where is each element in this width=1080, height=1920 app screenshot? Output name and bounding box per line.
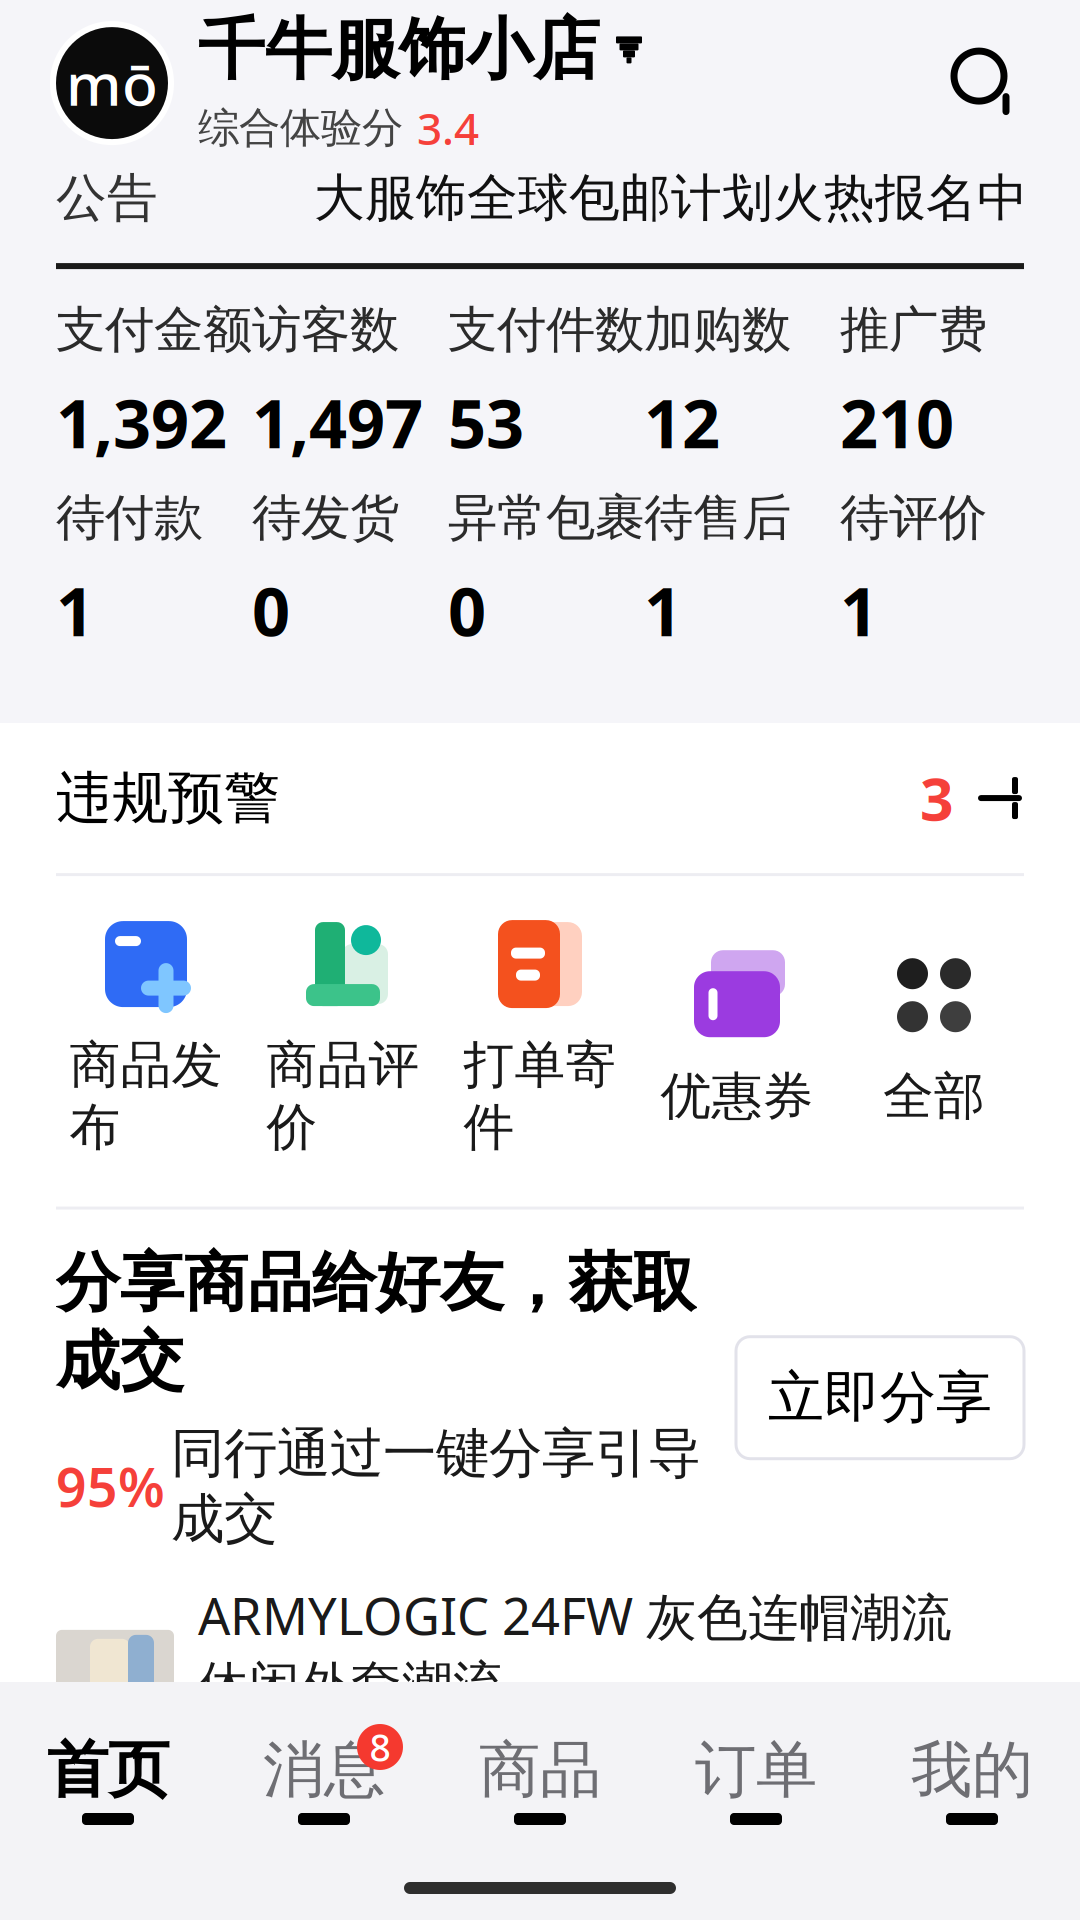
staticText: 推广费 — [840, 299, 987, 360]
staticText: 12 — [644, 378, 720, 467]
button[interactable]: ARMYLOGIC 24FW 灰色连帽潮流休闲外套潮流… — [56, 1552, 1024, 1844]
button[interactable]: 待发货 — [252, 487, 448, 673]
button[interactable]: 我的 — [864, 1712, 1080, 1852]
button[interactable]: 异常包裹 — [448, 487, 644, 673]
staticText: 3 — [920, 759, 954, 837]
button[interactable]: 支付件数 — [448, 299, 644, 485]
staticText: 商品ID 8493809380029 — [198, 1733, 744, 1800]
staticText: 1,392 — [56, 378, 227, 467]
staticText: 210 — [840, 378, 954, 467]
staticText: mō — [66, 44, 158, 122]
button[interactable]: 加购数 — [644, 299, 840, 485]
staticText: 公告 — [56, 167, 158, 229]
button[interactable]: 支付金额 — [56, 299, 252, 485]
button[interactable]: 商品评价 — [244, 916, 441, 1159]
button[interactable]: 待评价 — [840, 487, 1036, 673]
staticText: 待发货 — [252, 487, 399, 548]
staticText: 千牛服饰小店 — [198, 9, 600, 91]
staticText: 优惠券 — [660, 1065, 813, 1127]
button[interactable]: 订单 — [648, 1712, 864, 1852]
button[interactable]: 违规预警 — [0, 723, 1080, 873]
staticText: 同行通过一键分享引导成交 — [171, 1421, 701, 1552]
staticText: 打单寄件 — [463, 1034, 616, 1159]
staticText: 1,497 — [252, 378, 423, 467]
staticText: 待评价 — [840, 487, 987, 548]
button[interactable]: 打单寄件 — [441, 916, 638, 1159]
staticText: 53 — [448, 378, 524, 467]
staticText: 商品 — [479, 1732, 601, 1808]
button[interactable]: 全部 — [835, 947, 1032, 1127]
staticText: 访客数 — [252, 299, 399, 360]
staticText: 综合体验分 — [198, 103, 403, 153]
staticText: 支付金额 — [56, 299, 252, 360]
staticText: 95% — [56, 1451, 165, 1522]
button[interactable]: 公告 — [0, 155, 1080, 241]
staticText: 全部 — [883, 1065, 985, 1127]
staticText: 3.4 — [417, 99, 479, 157]
staticText: 异常包裹 — [448, 487, 644, 548]
staticText: 0 — [448, 566, 486, 655]
button[interactable]: 待售后 — [644, 487, 840, 673]
staticText: 0 — [252, 566, 290, 655]
staticText: 商品评价 — [266, 1034, 419, 1159]
staticText: 违规预警 — [56, 764, 280, 832]
button[interactable]: 待付款 — [56, 487, 252, 673]
staticText: 1 — [644, 566, 682, 655]
staticText: 我的 — [911, 1732, 1033, 1808]
staticText: ARMYLOGIC 24FW 灰色连帽潮流休闲外套潮流… — [198, 1582, 952, 1717]
staticText: 分享商品给好友，获取成交 — [56, 1244, 696, 1401]
button[interactable]: mō — [50, 9, 642, 157]
staticText: 支付件数 — [448, 299, 644, 360]
staticText: 首页 — [47, 1732, 169, 1808]
button[interactable]: 消息 — [216, 1712, 432, 1852]
button[interactable]: 访客数 — [252, 299, 448, 485]
staticText: 加购数 — [644, 299, 791, 360]
button[interactable]: 优惠券 — [638, 947, 835, 1127]
staticText: 立即分享 — [768, 1363, 992, 1432]
staticText: 订单 — [695, 1732, 817, 1808]
staticText: 8 — [369, 1722, 390, 1772]
button[interactable]: Search — [950, 47, 1022, 119]
button[interactable]: 推广费 — [840, 299, 1036, 485]
button[interactable]: 首页 — [0, 1712, 216, 1852]
staticText: 商品发布 — [69, 1034, 222, 1159]
button[interactable]: 商品 — [432, 1712, 648, 1852]
staticText: 1 — [56, 566, 94, 655]
button[interactable]: 商品发布 — [47, 916, 244, 1159]
staticText: 消息 — [263, 1732, 385, 1808]
button[interactable]: 立即分享 — [736, 1337, 1024, 1459]
staticText: 待付款 — [56, 487, 203, 548]
staticText: 大服饰全球包邮计划火热报名中 — [314, 167, 1028, 229]
staticText: 1 — [840, 566, 878, 655]
staticText: 待售后 — [644, 487, 791, 548]
